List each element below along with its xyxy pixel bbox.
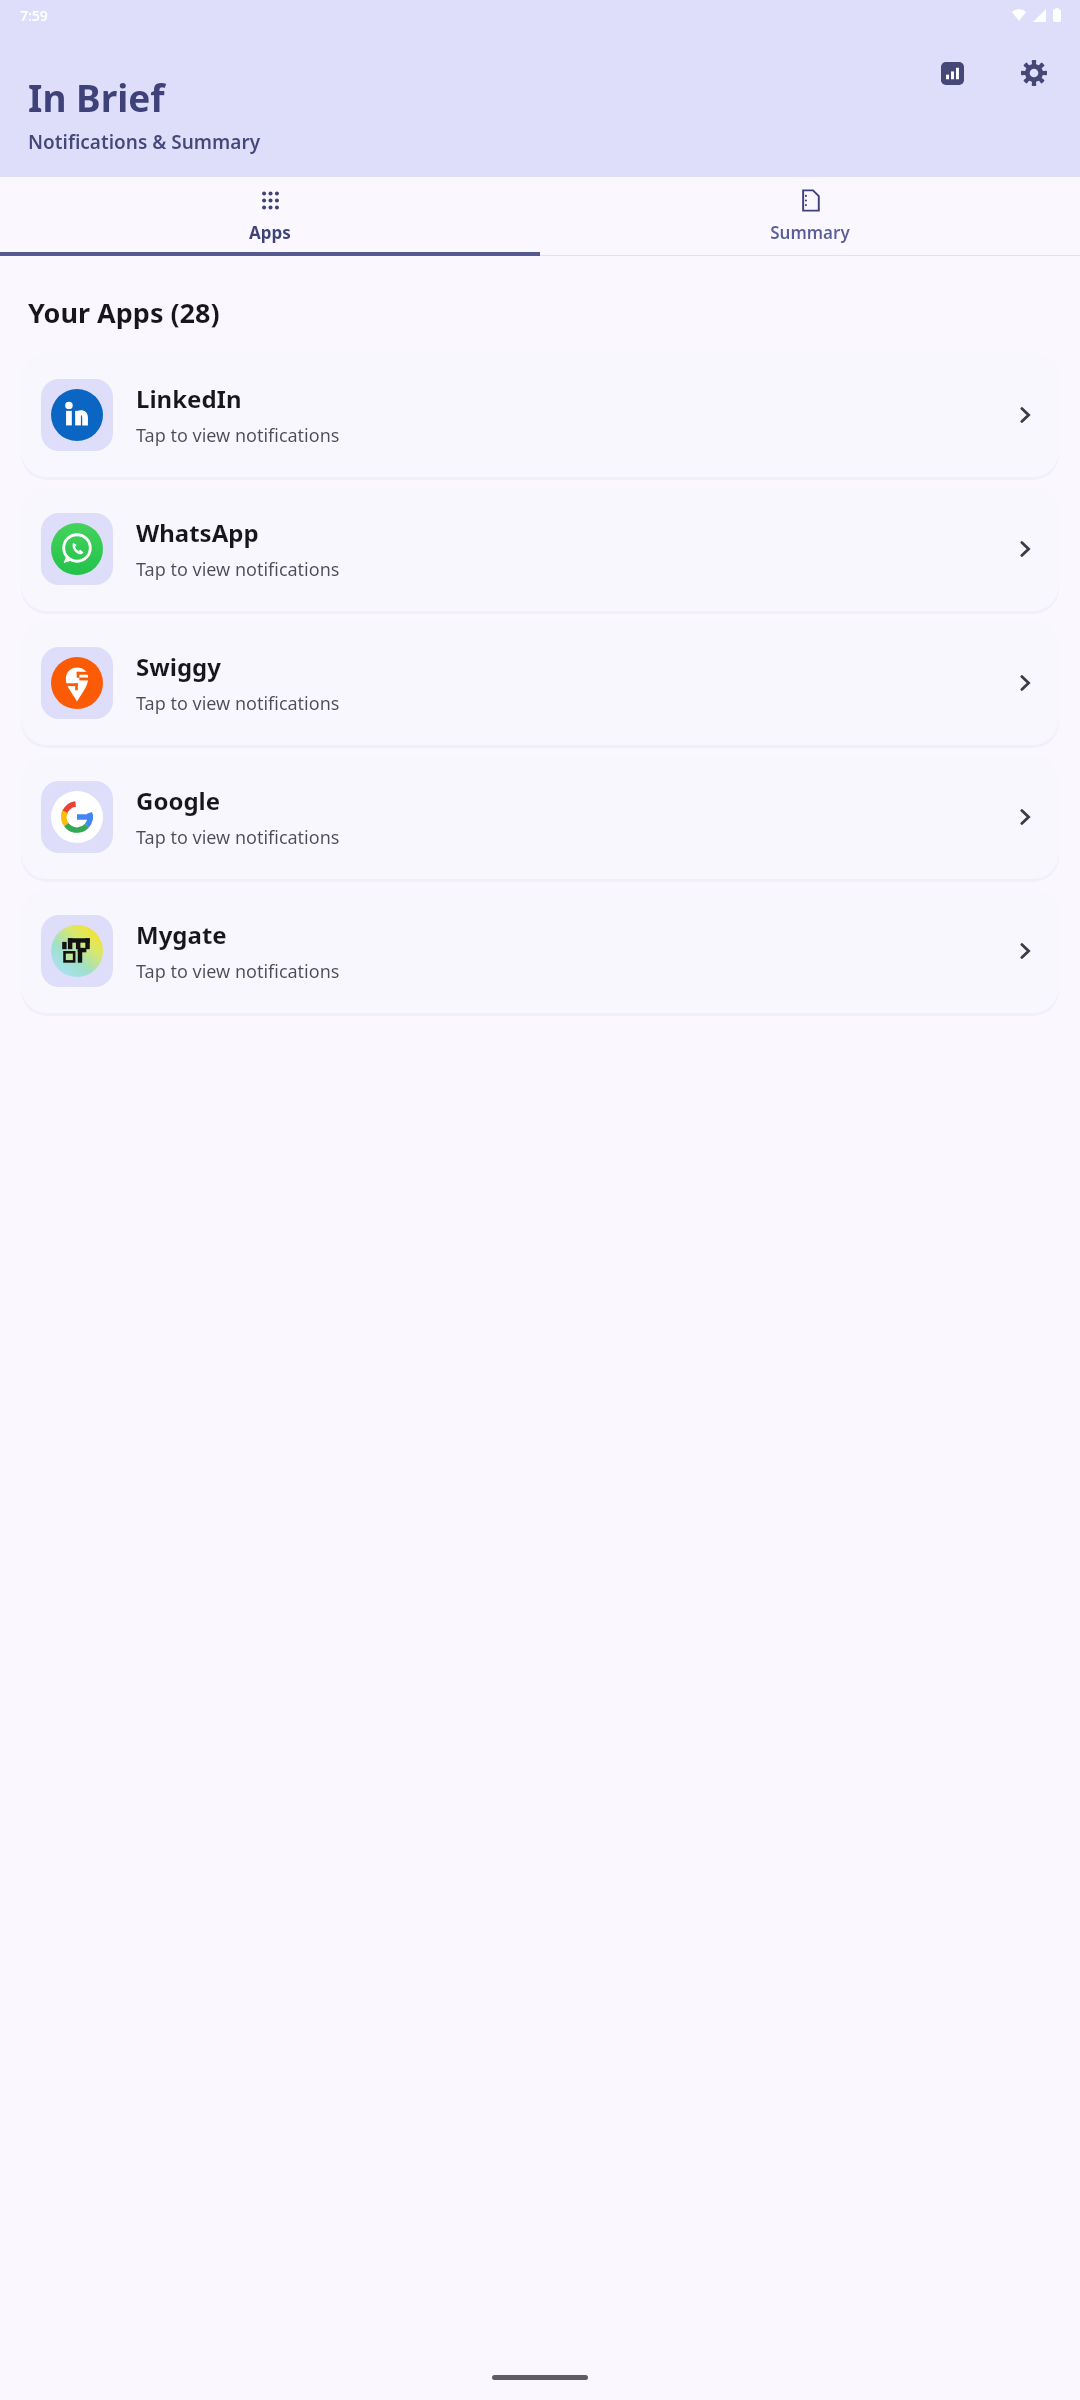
button[interactable]: Swiggy <box>21 621 1059 745</box>
button[interactable]: Statistics <box>928 49 976 97</box>
button[interactable]: LinkedIn <box>21 353 1059 477</box>
button[interactable]: WhatsApp <box>21 487 1059 611</box>
staticText: In Brief <box>28 72 165 122</box>
staticText: Summary <box>770 221 850 244</box>
staticText: Tap to view notifications <box>136 423 340 448</box>
staticText: Notifications & Summary <box>28 129 261 155</box>
button[interactable]: Summary <box>540 177 1080 256</box>
button[interactable]: Apps <box>0 177 540 256</box>
button[interactable]: Settings <box>1010 49 1058 97</box>
staticText: Tap to view notifications <box>136 557 340 582</box>
staticText: WhatsApp <box>136 516 259 549</box>
staticText: LinkedIn <box>136 382 242 415</box>
staticText: Apps <box>249 221 291 244</box>
staticText: Mygate <box>136 918 227 951</box>
staticText: Swiggy <box>136 650 221 683</box>
staticText: Google <box>136 784 221 817</box>
staticText: Tap to view notifications <box>136 691 340 716</box>
button[interactable]: Google <box>21 755 1059 879</box>
staticText: Your Apps (28) <box>28 294 220 331</box>
staticText: Tap to view notifications <box>136 825 340 850</box>
staticText: Tap to view notifications <box>136 959 340 984</box>
button[interactable]: Mygate <box>21 889 1059 1013</box>
staticText: 7:59 <box>20 6 48 25</box>
